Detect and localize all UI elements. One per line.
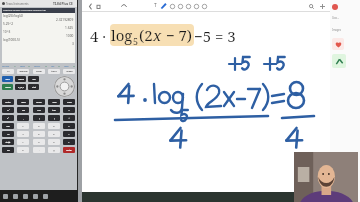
button[interactable]: (	[33, 115, 45, 121]
button[interactable]: x²	[2, 115, 14, 121]
button[interactable]: vars	[48, 99, 60, 105]
button[interactable]: zoom	[33, 69, 45, 74]
button[interactable]: trace	[48, 69, 60, 74]
button[interactable]: −	[63, 131, 75, 137]
staticText: sin	[22, 109, 25, 112]
staticText: x²	[7, 117, 9, 120]
staticText: 4 ·	[90, 26, 110, 46]
button[interactable]: 1	[17, 139, 29, 145]
staticText: ,	[23, 117, 24, 120]
button[interactable]: alpha	[2, 84, 13, 90]
button[interactable]: Sheets	[332, 54, 346, 68]
button[interactable]: tan	[48, 107, 60, 113]
button[interactable]: Taskbar item 5	[43, 194, 48, 199]
button[interactable]: ln	[2, 131, 14, 137]
button[interactable]: on	[2, 147, 14, 153]
staticText: −	[68, 133, 70, 136]
staticText: NORMAL FLOAT AUTO REAL RADIAN MP	[3, 9, 46, 12]
button[interactable]: Shapes	[184, 2, 192, 10]
button[interactable]: 2nd	[2, 76, 13, 82]
button[interactable]: Lasso	[192, 2, 200, 10]
button[interactable]: enter	[63, 147, 75, 153]
staticText: X,T,θ,n	[18, 86, 24, 88]
button[interactable]: 6	[48, 131, 60, 137]
button[interactable]: Home	[94, 2, 102, 10]
button[interactable]: window	[17, 69, 29, 74]
button[interactable]: y=	[2, 69, 14, 74]
button[interactable]: Add page	[318, 2, 326, 10]
button[interactable]: 0	[17, 147, 29, 153]
button[interactable]: )	[48, 115, 60, 121]
staticText: (-)	[53, 149, 55, 152]
staticText: 7	[22, 125, 24, 128]
staticText: log(25)/log(4)	[3, 14, 23, 18]
staticText: Texas Instruments	[6, 2, 29, 6]
staticText: )	[54, 117, 55, 120]
staticText: 3	[53, 141, 55, 144]
button[interactable]: 4	[17, 131, 29, 137]
staticText: tblset	[20, 65, 25, 68]
button[interactable]: clear	[63, 99, 75, 105]
button[interactable]: cos	[33, 107, 45, 113]
button[interactable]: 3	[48, 139, 60, 145]
button[interactable]: prgm	[33, 99, 45, 105]
staticText: 2nd	[5, 78, 10, 81]
button[interactable]: x⁻¹	[2, 107, 14, 113]
button[interactable]: Taskbar item 2	[13, 194, 18, 199]
button[interactable]: ×	[63, 123, 75, 129]
button[interactable]: Taskbar item 1	[3, 194, 8, 199]
staticText: f5	[73, 65, 75, 68]
staticText: log(1000-5)	[3, 38, 20, 42]
button[interactable]: math	[2, 99, 14, 105]
button[interactable]: Back	[86, 2, 94, 10]
button[interactable]: 2	[33, 139, 45, 145]
staticText: 0	[22, 149, 24, 152]
button[interactable]: Taskbar item 3	[23, 194, 28, 199]
button[interactable]: sto▶	[2, 139, 14, 145]
staticText: stat plot	[2, 65, 10, 68]
button[interactable]: 7	[17, 123, 29, 129]
staticText: ln	[7, 133, 10, 136]
button[interactable]: Directional pad	[54, 76, 75, 97]
button[interactable]: 9	[48, 123, 60, 129]
button[interactable]: Highlighter	[168, 2, 176, 10]
button[interactable]: log	[2, 123, 14, 129]
button[interactable]: del	[28, 76, 39, 82]
staticText: zoom	[36, 70, 42, 73]
button[interactable]: apps	[17, 99, 29, 105]
button[interactable]: ^	[63, 107, 75, 113]
staticText: math	[5, 101, 11, 104]
button[interactable]: ,	[17, 115, 29, 121]
button[interactable]: Taskbar item 4	[33, 194, 38, 199]
button[interactable]: Undo	[120, 2, 128, 10]
button[interactable]: graph	[63, 69, 75, 74]
button[interactable]: Facebook	[332, 187, 341, 196]
button[interactable]: sin	[17, 107, 29, 113]
button[interactable]: Eraser	[176, 2, 184, 10]
button[interactable]: ÷	[63, 115, 75, 121]
staticText: Images	[332, 28, 342, 32]
staticText: f4	[58, 65, 60, 68]
button[interactable]: Favorites	[332, 38, 344, 50]
button[interactable]: mode	[15, 76, 26, 82]
button[interactable]: 5	[33, 131, 45, 137]
staticText: alpha	[5, 86, 11, 89]
button[interactable]: (-)	[48, 147, 60, 153]
staticText: 1.625	[65, 26, 74, 30]
button[interactable]: X,T,θ,n	[15, 84, 26, 90]
staticText: f	[335, 188, 338, 196]
button[interactable]: stat	[28, 84, 39, 90]
button[interactable]: Pen	[159, 1, 168, 10]
button[interactable]: +	[63, 139, 75, 145]
staticText: sto▶	[5, 141, 11, 144]
button[interactable]: Messenger	[332, 166, 341, 175]
button[interactable]: 8	[33, 123, 45, 129]
button[interactable]: Extension	[332, 4, 338, 10]
button[interactable]: Search	[307, 2, 315, 10]
button[interactable]: Ruler	[200, 2, 208, 10]
staticText: calc	[51, 65, 55, 68]
staticText: TI-84 Plus CE	[53, 2, 73, 6]
staticText: (	[39, 117, 40, 120]
staticText: 6	[53, 133, 55, 136]
